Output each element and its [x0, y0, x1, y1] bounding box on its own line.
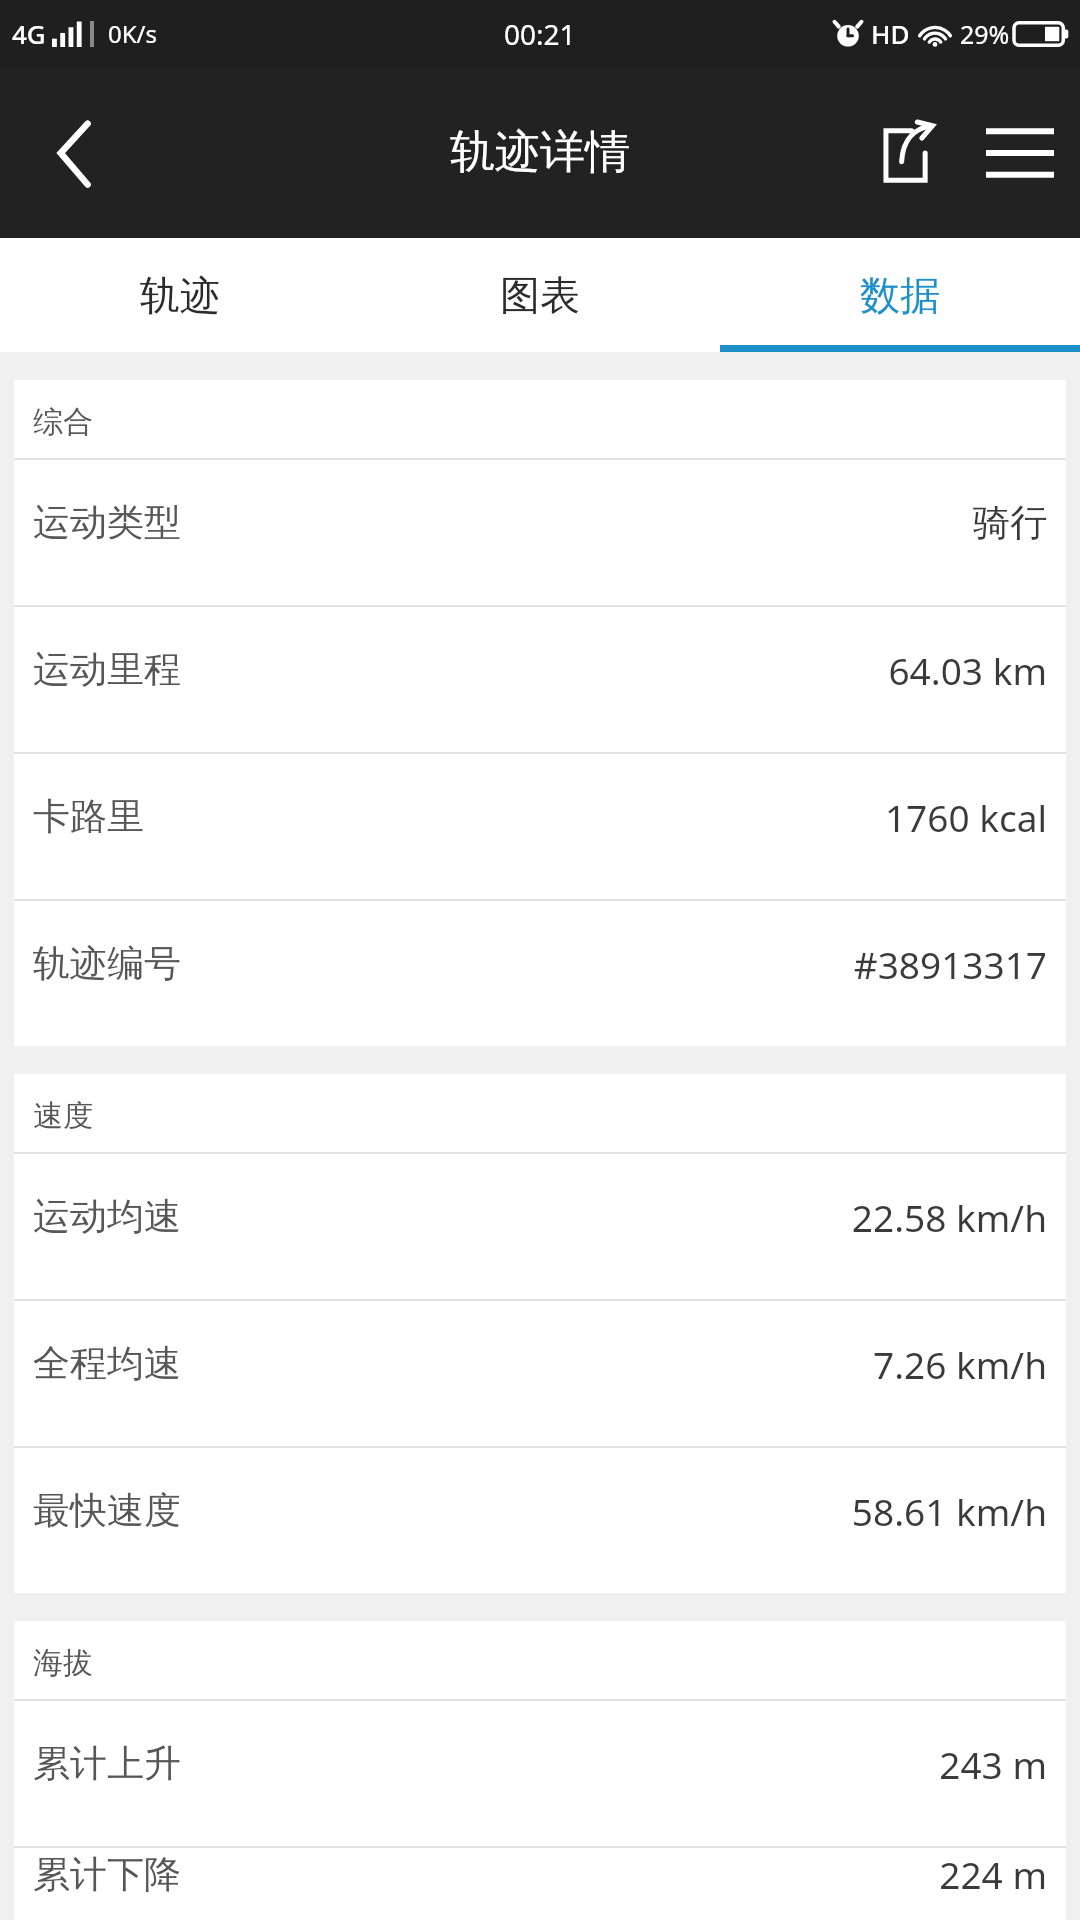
button[interactable]: 轨迹 — [0, 238, 360, 352]
staticText: 轨迹详情 — [450, 124, 630, 181]
staticText: 海拔 — [33, 1644, 93, 1682]
button[interactable]: 运动类型 — [14, 460, 1066, 605]
staticText: 0K/s — [108, 17, 158, 50]
staticText: 累计下降 — [33, 1851, 939, 1898]
button[interactable]: 卡路里 — [14, 754, 1066, 899]
button[interactable]: Menu — [960, 67, 1080, 238]
button[interactable]: 轨迹编号 — [14, 901, 1066, 1046]
staticText: 累计上升 — [33, 1740, 939, 1787]
button[interactable]: 最快速度 — [14, 1448, 1066, 1593]
staticText: 图表 — [500, 270, 580, 320]
staticText: 64.03 km — [888, 645, 1047, 695]
button[interactable]: Share — [850, 67, 960, 238]
staticText: HD — [871, 16, 910, 51]
staticText: 最快速度 — [33, 1487, 851, 1534]
button[interactable]: Back — [0, 67, 150, 238]
staticText: 00:21 — [504, 15, 576, 53]
staticText: 58.61 km/h — [851, 1486, 1047, 1536]
staticText: 运动类型 — [33, 499, 973, 546]
button[interactable]: 运动均速 — [14, 1154, 1066, 1299]
staticText: 数据 — [860, 270, 940, 320]
staticText: 卡路里 — [33, 793, 884, 840]
button[interactable]: 数据 — [720, 238, 1080, 352]
button[interactable]: 累计上升 — [14, 1701, 1066, 1846]
staticText: 综合 — [33, 403, 93, 441]
staticText: 243 m — [939, 1739, 1047, 1789]
staticText: 22.58 km/h — [851, 1192, 1047, 1242]
staticText: 运动里程 — [33, 646, 888, 693]
staticText: 4G — [12, 16, 46, 51]
staticText: 骑行 — [973, 499, 1047, 546]
staticText: 全程均速 — [33, 1340, 872, 1387]
button[interactable]: 图表 — [360, 238, 720, 352]
staticText: #38913317 — [853, 939, 1047, 989]
button[interactable]: 全程均速 — [14, 1301, 1066, 1446]
button[interactable]: 运动里程 — [14, 607, 1066, 752]
staticText: 1760 kcal — [884, 792, 1047, 842]
staticText: 速度 — [33, 1097, 93, 1135]
button[interactable]: 累计下降 — [14, 1848, 1066, 1920]
staticText: 轨迹 — [140, 270, 220, 320]
staticText: 轨迹编号 — [33, 940, 853, 987]
staticText: 运动均速 — [33, 1193, 851, 1240]
staticText: 7.26 km/h — [872, 1339, 1047, 1389]
staticText: 224 m — [939, 1849, 1047, 1899]
staticText: 29% — [960, 17, 1010, 51]
